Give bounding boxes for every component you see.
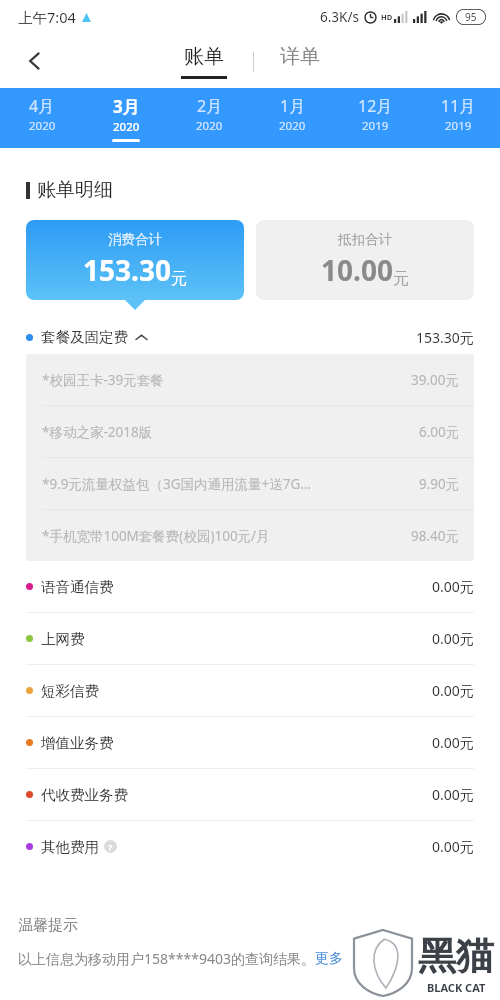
staticText: *手机宽带100M套餐费(校园)100元/月: [42, 527, 270, 545]
staticText: 6.3K/s: [320, 8, 359, 26]
button[interactable]: 1月: [251, 88, 334, 148]
button[interactable]: Back: [12, 38, 58, 84]
button[interactable]: 语音通信费: [26, 561, 474, 612]
staticText: 代收费业务费: [41, 786, 128, 804]
staticText: 2020: [113, 119, 140, 135]
button[interactable]: 消费合计: [26, 220, 244, 300]
staticText: 2019: [362, 118, 389, 134]
staticText: 153.30元: [416, 328, 474, 347]
staticText: 2019: [445, 118, 472, 134]
staticText: 账单明细: [37, 178, 113, 202]
staticText: 增值业务费: [41, 734, 114, 752]
staticText: 元: [393, 269, 409, 289]
staticText: 详单: [280, 44, 320, 69]
button[interactable]: 12月: [334, 88, 417, 148]
staticText: 4月: [29, 95, 55, 117]
button[interactable]: 4月: [0, 88, 84, 148]
staticText: 账单: [184, 44, 224, 69]
staticText: 上网费: [41, 630, 85, 648]
staticText: 0.00元: [432, 629, 474, 648]
button[interactable]: *移动之家-2018版: [42, 406, 460, 457]
staticText: 以上信息为移动用户158****9403的查询结果。: [18, 949, 315, 968]
staticText: HD: [381, 12, 393, 22]
staticText: 0.00元: [432, 577, 474, 596]
staticText: 消费合计: [108, 231, 162, 248]
staticText: 元: [171, 269, 187, 289]
staticText: 10.00: [321, 251, 393, 289]
button[interactable]: 账单: [173, 44, 235, 79]
button[interactable]: 11月: [417, 88, 500, 148]
button[interactable]: *手机宽带100M套餐费(校园)100元/月: [42, 510, 460, 561]
staticText: 2020: [29, 118, 56, 134]
staticText: 上午7:04: [18, 7, 76, 27]
staticText: 2020: [196, 118, 223, 134]
staticText: 语音通信费: [41, 578, 114, 596]
button[interactable]: 3月: [84, 88, 168, 148]
staticText: 9.90元: [419, 475, 460, 493]
staticText: 抵扣合计: [338, 231, 392, 248]
staticText: 1月: [280, 95, 306, 117]
button[interactable]: 增值业务费: [26, 717, 474, 768]
staticText: 0.00元: [432, 785, 474, 804]
button[interactable]: 短彩信费: [26, 665, 474, 716]
staticText: 0.00元: [432, 681, 474, 700]
staticText: 2月: [197, 95, 223, 117]
staticText: 2020: [279, 118, 306, 134]
staticText: 3月: [113, 95, 140, 118]
staticText: 39.00元: [411, 371, 460, 389]
button[interactable]: *9.9元流量权益包（3G国内通用流量+送7G…: [42, 458, 460, 509]
button[interactable]: 更多: [315, 950, 343, 968]
staticText: 12月: [358, 95, 393, 117]
staticText: 更多: [315, 950, 343, 968]
staticText: 黑猫: [418, 932, 494, 980]
button[interactable]: 套餐及固定费: [26, 320, 474, 354]
staticText: BLACK CAT: [427, 980, 486, 995]
button[interactable]: 上网费: [26, 613, 474, 664]
staticText: 温馨提示: [18, 916, 78, 935]
staticText: 153.30: [83, 251, 171, 289]
staticText: *校园王卡-39元套餐: [42, 371, 164, 389]
staticText: 短彩信费: [41, 682, 99, 700]
button[interactable]: 详单: [272, 44, 328, 69]
button[interactable]: 2月: [168, 88, 251, 148]
staticText: *移动之家-2018版: [42, 423, 153, 441]
staticText: 其他费用: [41, 838, 99, 856]
staticText: 95: [465, 10, 477, 24]
staticText: 11月: [441, 95, 476, 117]
staticText: 0.00元: [432, 733, 474, 752]
staticText: ?: [108, 841, 113, 853]
button[interactable]: 其他费用: [26, 821, 474, 872]
staticText: 98.40元: [411, 527, 460, 545]
staticText: 套餐及固定费: [41, 328, 128, 346]
button[interactable]: *校园王卡-39元套餐: [42, 354, 460, 405]
staticText: 6.00元: [419, 423, 460, 441]
button[interactable]: 代收费业务费: [26, 769, 474, 820]
staticText: 0.00元: [432, 837, 474, 856]
button[interactable]: 抵扣合计: [256, 220, 474, 300]
staticText: *9.9元流量权益包（3G国内通用流量+送7G…: [42, 475, 312, 493]
